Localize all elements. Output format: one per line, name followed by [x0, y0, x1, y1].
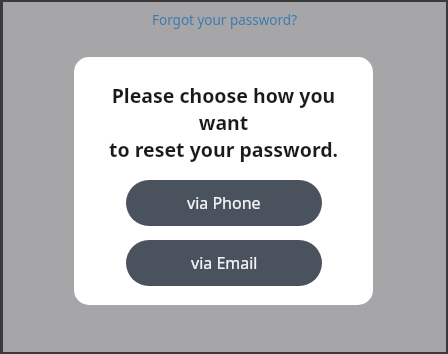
staticText: Please choose how you want to reset your…	[86, 82, 361, 163]
button[interactable]: Forgot your password?	[146, 9, 304, 31]
staticText: via Email	[191, 252, 258, 274]
button[interactable]: via Email	[126, 240, 322, 286]
staticText: Forgot your password?	[152, 11, 298, 29]
staticText: via Phone	[187, 192, 261, 214]
button[interactable]: via Phone	[126, 180, 322, 226]
